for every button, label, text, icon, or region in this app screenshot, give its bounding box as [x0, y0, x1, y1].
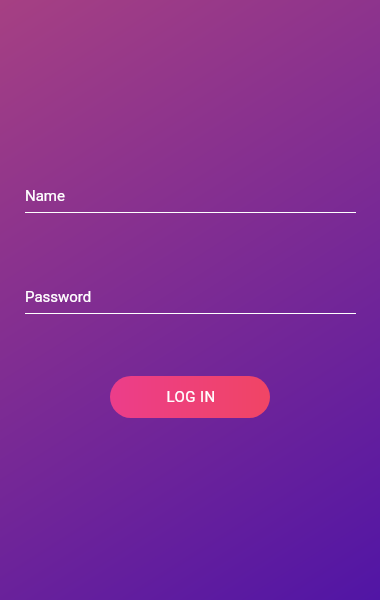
button[interactable]: LOG IN: [110, 376, 270, 418]
button[interactable]: Name: [24, 187, 356, 215]
staticText: Name: [25, 187, 65, 205]
button[interactable]: Password: [24, 288, 356, 316]
staticText: LOG IN: [166, 388, 216, 406]
staticText: Password: [25, 288, 92, 306]
